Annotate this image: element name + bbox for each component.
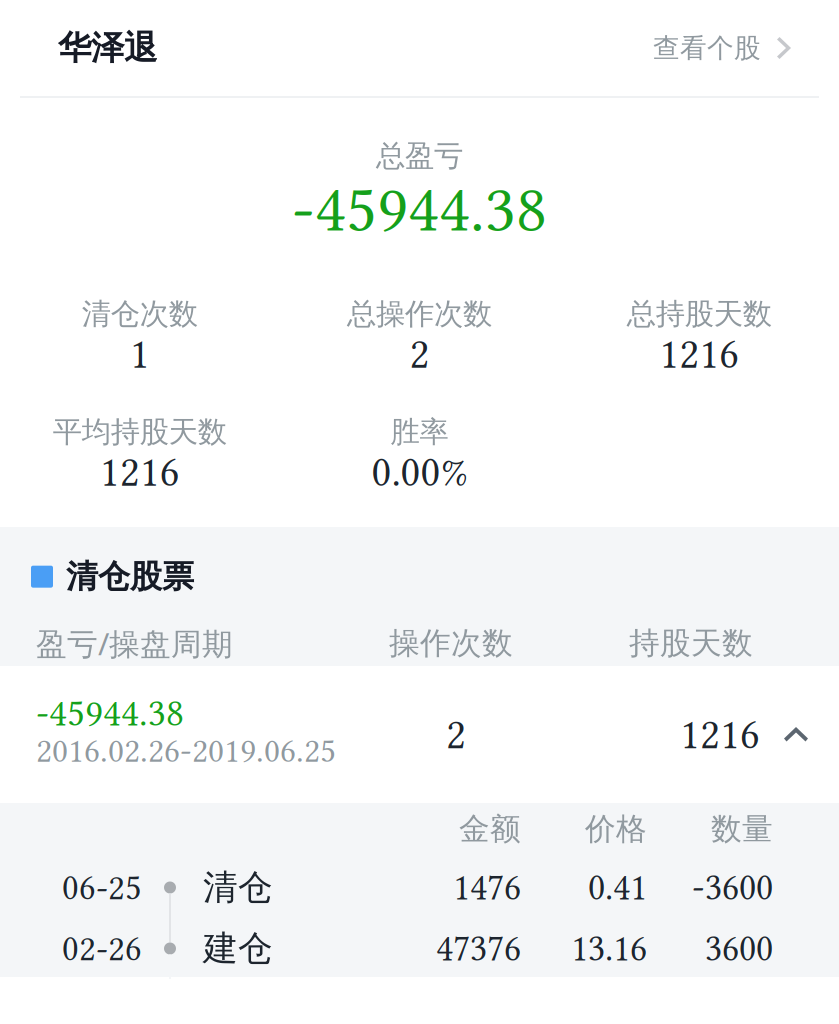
staticText: 06-25 [62,867,142,908]
staticText: 价格 [585,810,647,848]
staticText: 1216 [659,330,739,378]
staticText: 数量 [711,810,773,848]
staticText: 2 [446,710,466,759]
staticText: 3600 [705,927,773,970]
staticText: 操作次数 [389,624,513,662]
staticText: 持股天数 [629,624,753,662]
staticText: 胜率 [390,414,448,450]
staticText: 总操作次数 [347,296,492,332]
staticText: 02-26 [62,928,142,969]
staticText: 金额 [459,810,521,848]
staticText: -3600 [692,866,773,909]
staticText: 盈亏/操盘周期 [36,623,233,664]
staticText: -45944.38 [292,171,547,247]
staticText: 2016.02.26-2019.06.25 [36,731,336,770]
staticText: 华泽退 [58,27,157,68]
staticText: 查看个股 [653,32,761,64]
staticText: 1476 [453,866,521,909]
button[interactable]: -45944.38 [0,666,839,803]
staticText: 1 [130,330,150,378]
staticText: 0.41 [588,866,647,909]
staticText: 清仓 [203,866,273,909]
staticText: -45944.38 [36,691,184,735]
staticText: 13.16 [571,927,647,970]
staticText: 清仓次数 [82,296,198,332]
staticText: 2 [409,330,429,378]
staticText: 总盈亏 [376,138,463,174]
staticText: 总持股天数 [627,296,772,332]
staticText: 建仓 [203,927,273,970]
staticText: 平均持股天数 [53,414,227,450]
staticText: 0.00% [371,448,467,496]
staticText: 1216 [100,448,180,496]
button[interactable]: 查看个股 [653,32,793,64]
staticText: 1216 [680,710,760,759]
staticText: 清仓股票 [66,557,194,596]
staticText: 47376 [436,927,521,970]
